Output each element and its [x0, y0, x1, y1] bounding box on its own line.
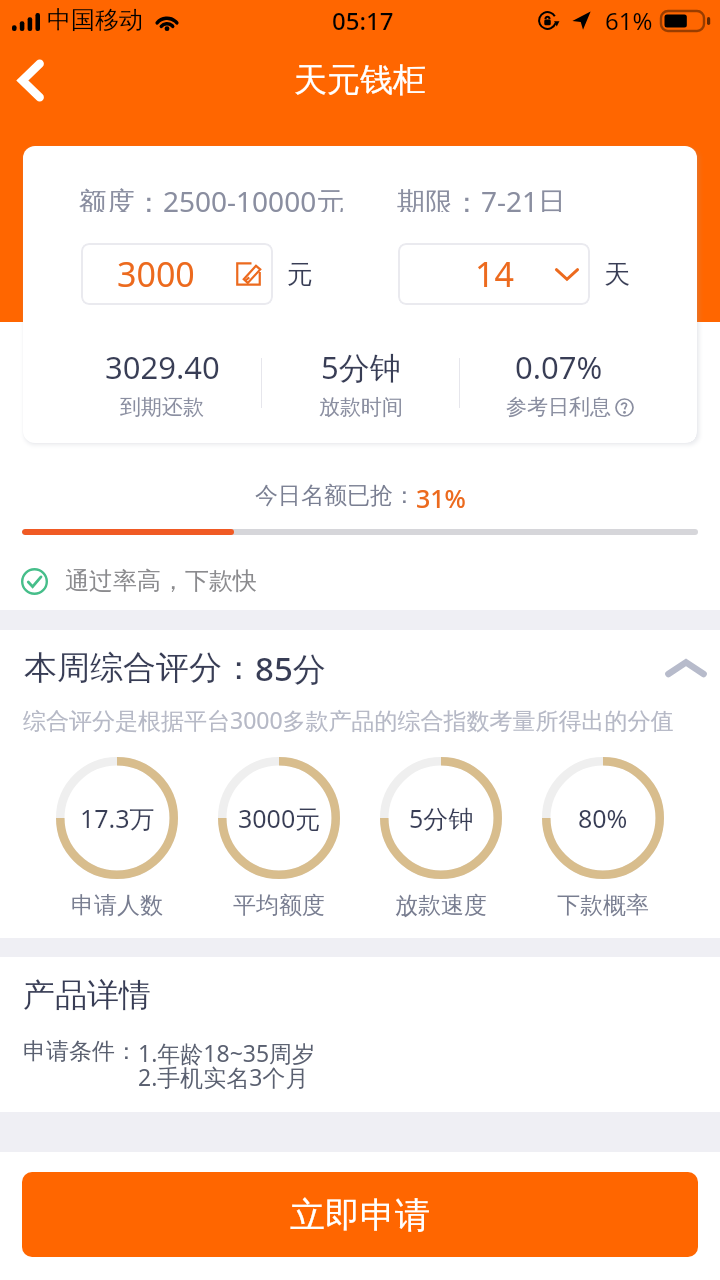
staticText: 综合评分是根据平台3000多款产品的综合指数考量所得出的分值	[23, 704, 674, 735]
staticText: 2.手机实名3个月	[138, 1061, 309, 1092]
staticText: 61%	[605, 4, 653, 37]
staticText: 5分钟	[321, 346, 401, 388]
staticText: 1.年龄18~35周岁	[138, 1037, 316, 1068]
button[interactable]: Back	[0, 50, 62, 110]
staticText: 参考日利息	[506, 394, 611, 420]
staticText: 申请人数	[71, 891, 163, 920]
staticText: 0.07%	[515, 346, 603, 388]
staticText: 额度：2500-10000元	[79, 182, 345, 212]
button[interactable]: Collapse	[660, 646, 712, 690]
staticText: 05:17	[332, 4, 394, 37]
staticText: 产品详情	[23, 975, 151, 1015]
staticText: 放款时间	[319, 394, 403, 420]
staticText: 期限：7-21日	[397, 182, 567, 212]
staticText: 通过率高，下款快	[65, 566, 257, 596]
staticText: 下款概率	[557, 891, 649, 920]
staticText: 3000	[117, 251, 195, 297]
button[interactable]: 立即申请	[22, 1172, 698, 1257]
staticText: 80%	[578, 801, 628, 835]
staticText: 到期还款	[120, 394, 204, 420]
staticText: 中国移动	[47, 5, 143, 35]
staticText: 14	[475, 251, 514, 297]
staticText: 放款速度	[395, 891, 487, 920]
staticText: 3000元	[238, 801, 321, 835]
staticText: 元	[287, 258, 313, 291]
staticText: 平均额度	[233, 891, 325, 920]
staticText: 31%	[416, 481, 466, 509]
staticText: 立即申请	[290, 1193, 430, 1237]
staticText: 85分	[255, 646, 326, 690]
staticText: 申请条件：	[23, 1037, 138, 1066]
staticText: 5分钟	[409, 801, 474, 835]
staticText: 3029.40	[105, 346, 220, 388]
staticText: 本周综合评分：	[24, 647, 255, 689]
staticText: 天元钱柜	[294, 59, 426, 101]
staticText: 天	[604, 258, 630, 291]
staticText: 17.3万	[80, 801, 155, 835]
button[interactable]: Edit loan amount	[81, 243, 273, 305]
staticText: 今日名额已抢：	[255, 481, 416, 509]
button[interactable]: Select loan term	[398, 243, 590, 305]
